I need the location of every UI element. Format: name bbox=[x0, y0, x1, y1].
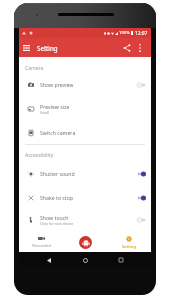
staticText: Shake to stop bbox=[40, 194, 74, 201]
button[interactable]: Back bbox=[43, 254, 55, 266]
button[interactable]: Setting bbox=[107, 228, 151, 253]
button[interactable]: Recorded bbox=[19, 228, 63, 253]
button[interactable]: Recents bbox=[115, 254, 127, 266]
button[interactable]: Shutter sound bbox=[19, 162, 151, 185]
staticText: Setting bbox=[37, 44, 58, 52]
button[interactable]: Show touch bbox=[19, 208, 151, 231]
button[interactable]: Preview size bbox=[19, 97, 151, 120]
staticText: Show preview bbox=[40, 81, 74, 88]
button[interactable]: Record bbox=[79, 236, 92, 249]
staticText: 100% bbox=[119, 30, 130, 36]
button[interactable]: Menu bbox=[19, 41, 33, 55]
button[interactable]: More options bbox=[134, 42, 145, 53]
staticText: Switch camera bbox=[40, 129, 76, 136]
staticText: 12:07 bbox=[135, 30, 148, 37]
staticText: Preview size bbox=[40, 103, 70, 110]
staticText: Accessibility bbox=[25, 152, 54, 159]
staticText: Recorded bbox=[32, 243, 51, 249]
staticText: Setting bbox=[122, 244, 136, 250]
staticText: Show touch bbox=[40, 214, 69, 221]
staticText: Small bbox=[40, 110, 50, 115]
staticText: Shutter sound bbox=[40, 170, 75, 177]
button[interactable]: Share bbox=[120, 41, 134, 55]
button[interactable]: Shake to stop bbox=[19, 186, 151, 209]
button[interactable]: Home bbox=[79, 254, 91, 266]
staticText: Only for root device bbox=[40, 221, 74, 226]
button[interactable]: Switch camera bbox=[19, 121, 151, 144]
button[interactable]: Show preview bbox=[19, 73, 151, 96]
staticText: Camera bbox=[25, 65, 44, 72]
